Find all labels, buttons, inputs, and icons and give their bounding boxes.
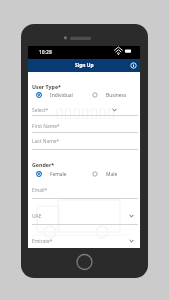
button[interactable]: Select* [32,105,138,115]
button[interactable]: Individual [34,90,73,100]
button[interactable]: Emirate* [32,236,138,246]
staticText: Email* [32,187,48,194]
staticText: Last Name* [32,138,60,145]
button[interactable]: Female [34,169,67,179]
staticText: Select* [32,107,49,114]
staticText: Business [106,92,127,99]
button[interactable]: Last Name* [32,136,138,146]
button[interactable]: Business [90,90,127,100]
button[interactable]: First Name* [32,121,138,131]
staticText: Emirate* [32,238,53,245]
staticText: User Type* [32,83,61,90]
staticText: UAE [32,213,42,220]
button[interactable]: Info [127,59,140,72]
staticText: Gender* [32,161,55,168]
button[interactable]: Male [90,169,118,179]
staticText: 10:28 [39,49,52,56]
staticText: First Name* [32,123,60,130]
staticText: Male [106,171,118,178]
button[interactable]: Email* [32,185,138,195]
staticText: Female [50,171,67,178]
staticText: Individual [50,92,73,99]
staticText: Sign Up [75,62,94,69]
button[interactable]: UAE [32,211,138,221]
